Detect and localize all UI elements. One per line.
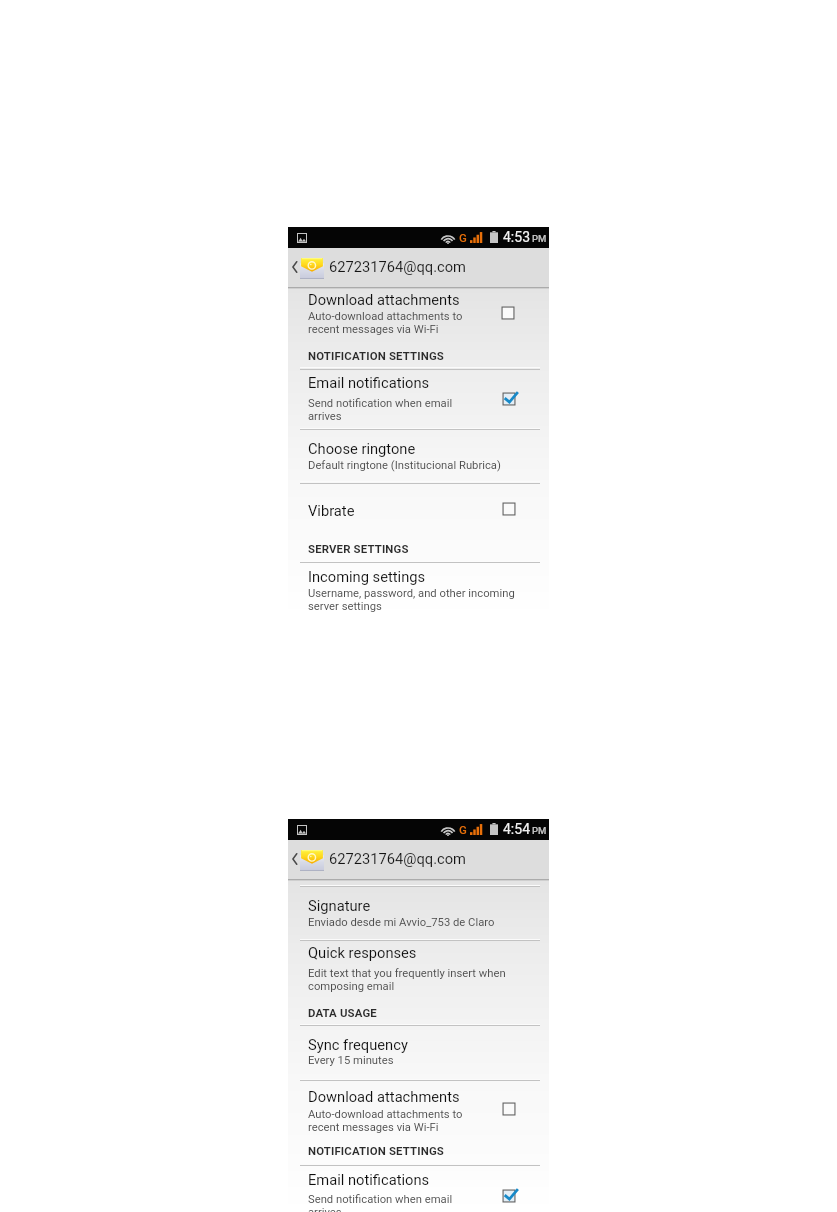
button[interactable]: Unchecked xyxy=(499,499,519,519)
button[interactable] xyxy=(288,561,549,616)
staticText: Download attachments xyxy=(308,291,460,308)
staticText: Enviado desde mi Avvio_753 de Claro xyxy=(308,916,495,929)
staticText: G xyxy=(459,823,467,836)
staticText: Username, password, and other incoming s… xyxy=(308,587,515,613)
button[interactable] xyxy=(288,1024,549,1074)
staticText: Auto-download attachments to recent mess… xyxy=(308,1108,463,1134)
staticText: Send notification when email arrives xyxy=(308,1193,453,1212)
staticText: PM xyxy=(532,233,547,244)
staticText: Sync frequency xyxy=(308,1036,408,1053)
staticText: 4:53 xyxy=(503,229,530,245)
button[interactable]: Checked xyxy=(499,1186,519,1206)
staticText: Vibrate xyxy=(308,502,355,519)
button[interactable] xyxy=(288,1164,549,1212)
button[interactable]: Navigate up xyxy=(290,840,551,879)
staticText: Default ringtone (Institucional Rubrica) xyxy=(308,459,501,472)
staticText: SERVER SETTINGS xyxy=(308,542,409,555)
staticText: 627231764@qq.com xyxy=(329,258,466,275)
staticText: Every 15 minutes xyxy=(308,1054,394,1067)
button[interactable]: Checked xyxy=(499,389,519,409)
button[interactable]: Navigate up xyxy=(290,248,551,287)
staticText: 4:54 xyxy=(503,821,530,837)
staticText: Auto-download attachments to recent mess… xyxy=(308,310,463,336)
staticText: PM xyxy=(532,825,547,836)
button[interactable] xyxy=(288,1076,549,1134)
staticText: Edit text that you frequently insert whe… xyxy=(308,967,506,993)
button[interactable] xyxy=(288,368,549,428)
button[interactable] xyxy=(288,288,549,338)
staticText: DATA USAGE xyxy=(308,1006,377,1019)
staticText: Quick responses xyxy=(308,944,417,961)
staticText: Choose ringtone xyxy=(308,440,416,457)
staticText: Download attachments xyxy=(308,1088,460,1105)
staticText: Incoming settings xyxy=(308,568,426,585)
button[interactable] xyxy=(288,480,549,528)
button[interactable] xyxy=(288,939,549,1007)
staticText: NOTIFICATION SETTINGS xyxy=(308,1144,444,1157)
staticText: Email notifications xyxy=(308,1171,430,1188)
button[interactable] xyxy=(288,431,549,477)
staticText: Email notifications xyxy=(308,374,430,391)
staticText: Signature xyxy=(308,897,371,914)
button[interactable] xyxy=(288,887,549,935)
staticText: G xyxy=(459,231,467,244)
button[interactable]: Unchecked xyxy=(498,303,518,323)
staticText: 627231764@qq.com xyxy=(329,850,466,867)
staticText: Send notification when email arrives xyxy=(308,397,453,423)
staticText: NOTIFICATION SETTINGS xyxy=(308,349,444,362)
button[interactable]: Unchecked xyxy=(499,1099,519,1119)
